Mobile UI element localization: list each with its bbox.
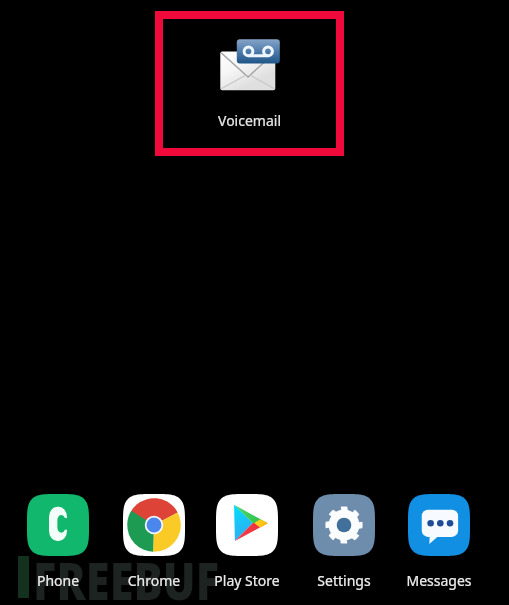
button[interactable]: Open Voicemail app [155,11,344,156]
staticText: Play Store [200,571,294,590]
button[interactable]: Open Settings [297,488,391,588]
staticText: Messages [392,571,486,590]
staticText: Chrome [107,571,201,590]
button[interactable]: Open Play Store [200,488,294,588]
staticText: Phone [11,571,105,590]
staticText: Settings [297,571,391,590]
button[interactable]: Open Messages [392,488,486,588]
button[interactable]: Open Chrome [107,488,201,588]
button[interactable]: Open Phone [11,488,105,588]
staticText: Voicemail [155,111,344,130]
staticText: FREEBUF [33,545,220,605]
